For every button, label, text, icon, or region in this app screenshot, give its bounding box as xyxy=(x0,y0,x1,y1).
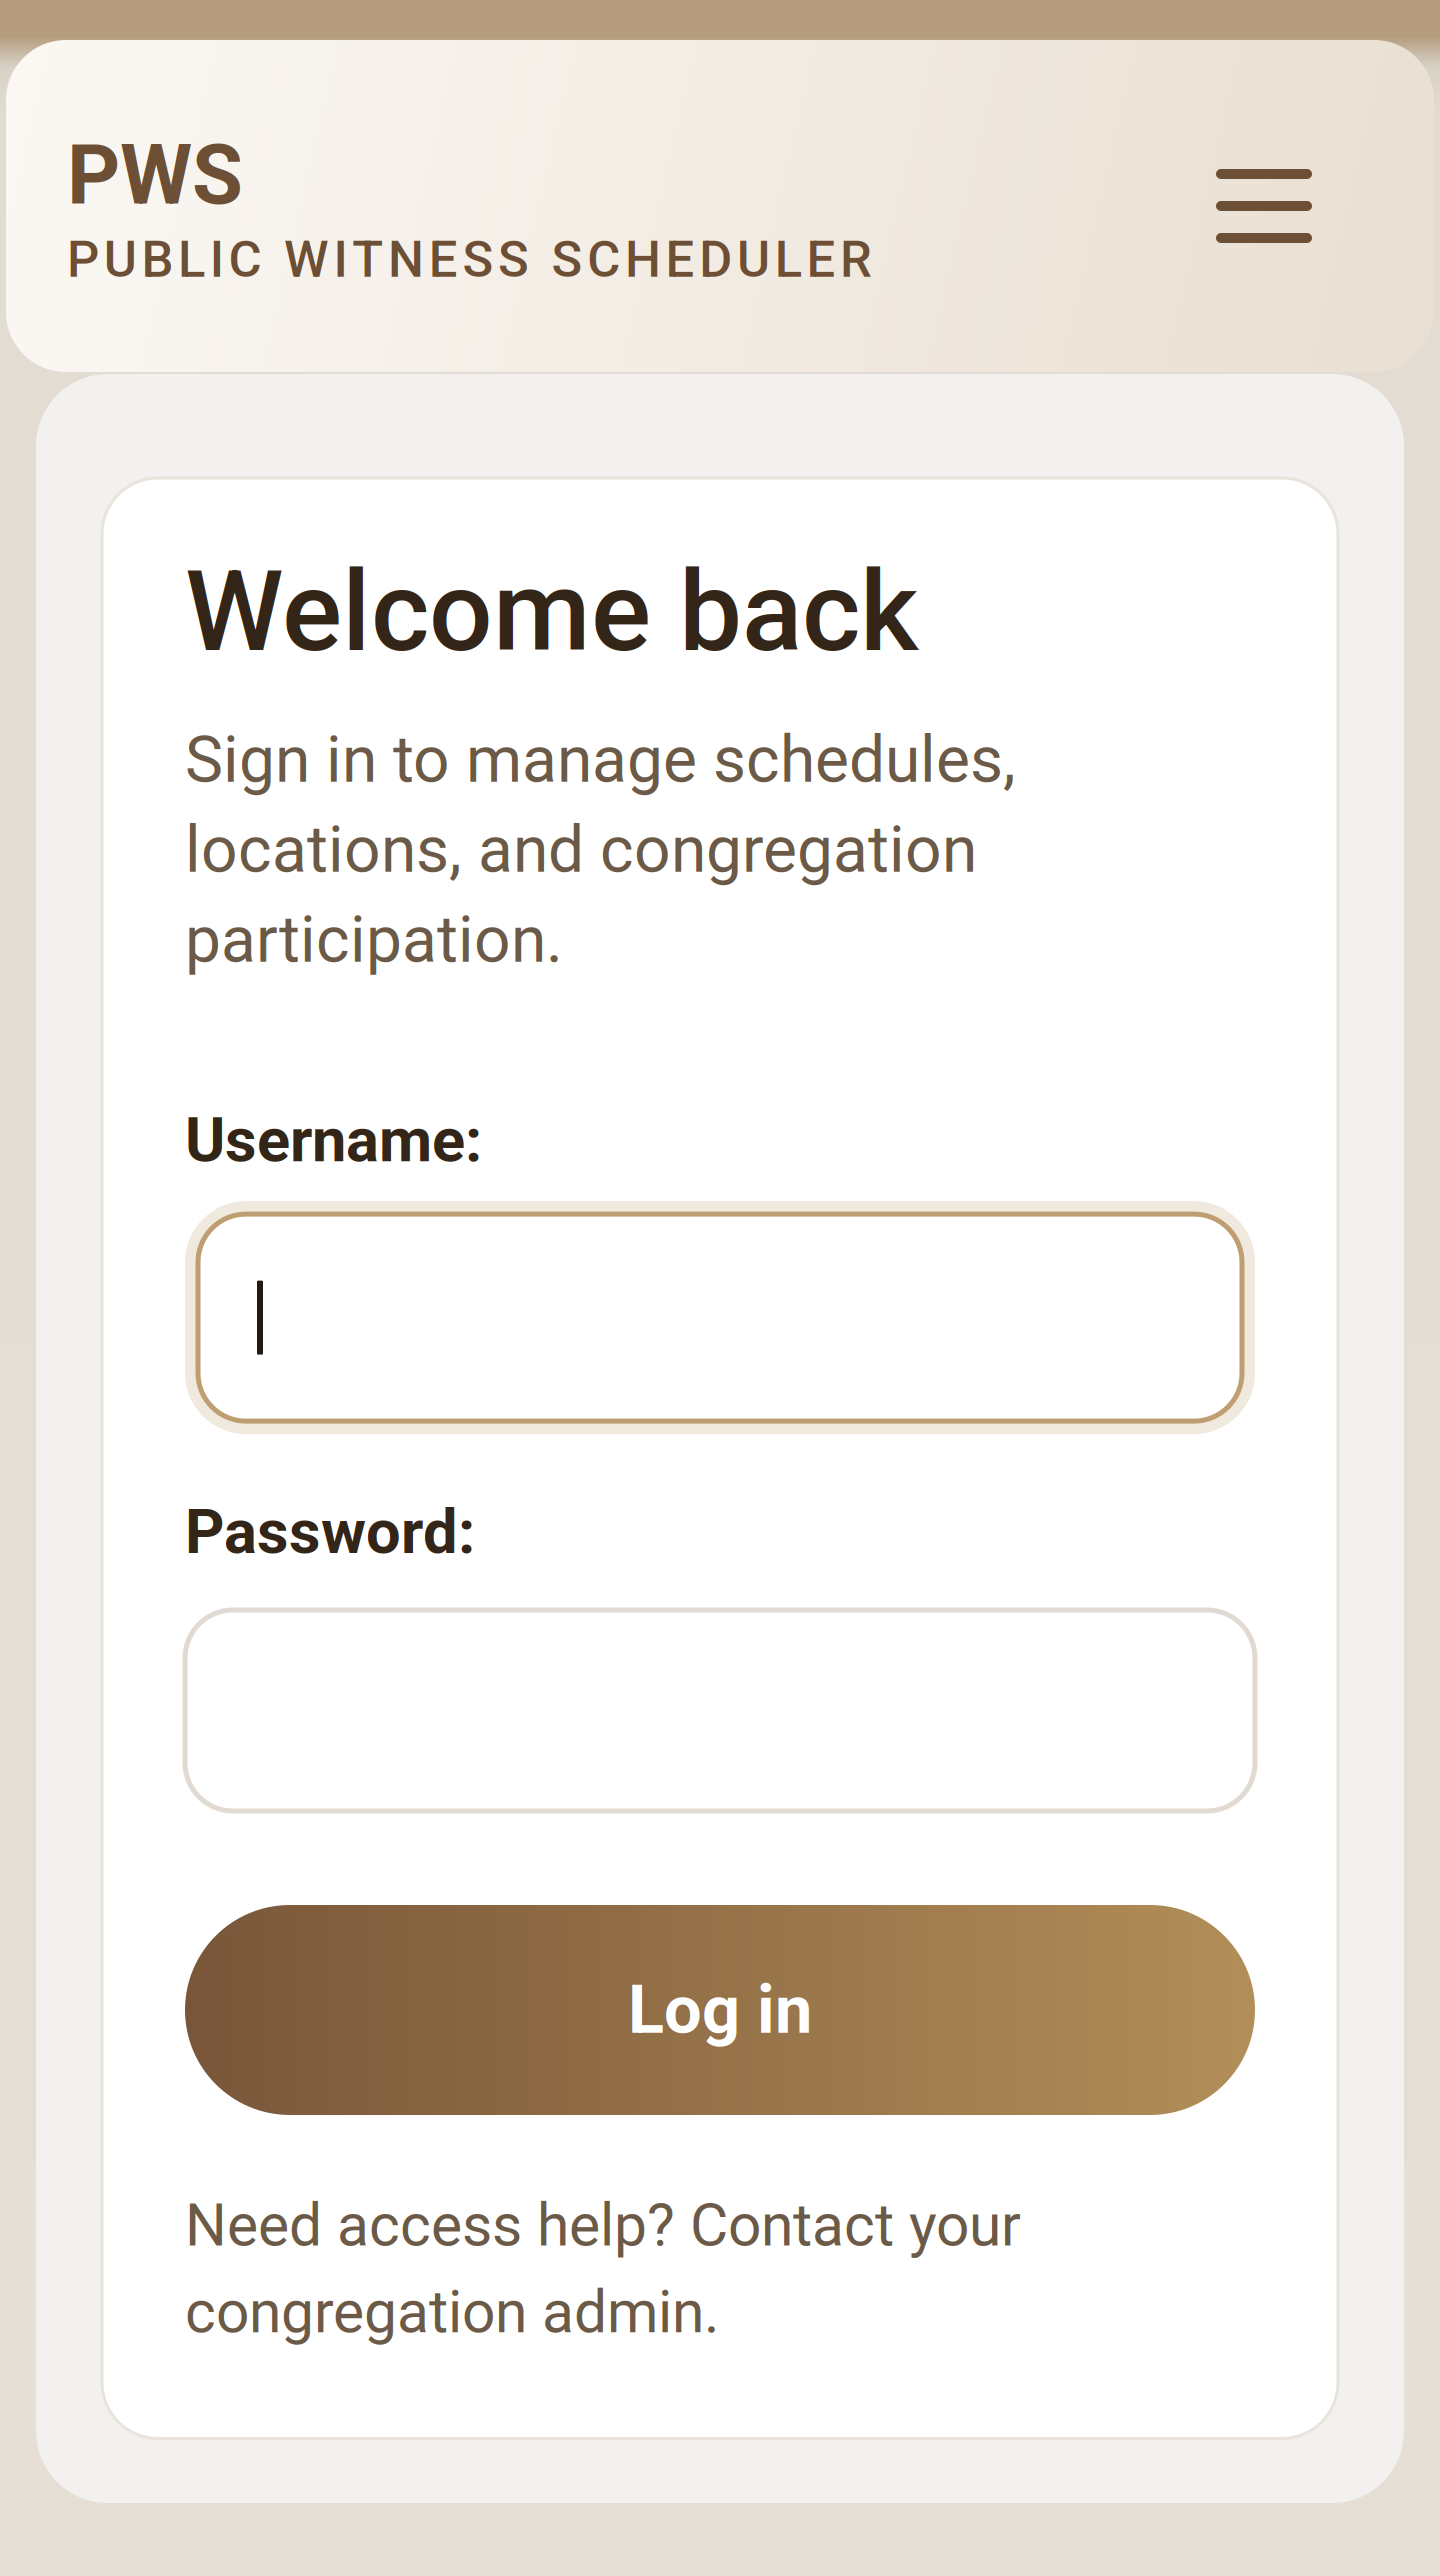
staticText: I xyxy=(210,230,224,289)
staticText: E xyxy=(666,230,695,289)
staticText: Sign in to manage schedules, locations, … xyxy=(185,722,1016,977)
staticText: H xyxy=(625,230,661,289)
staticText: P xyxy=(67,230,99,289)
staticText: U xyxy=(737,230,770,289)
staticText: Username: xyxy=(185,1104,482,1176)
staticText: E xyxy=(429,230,458,289)
staticText: Log in xyxy=(628,1971,812,2049)
staticText: D xyxy=(699,230,732,289)
staticText: E xyxy=(806,230,835,289)
staticText: Welcome back xyxy=(185,546,918,677)
staticText: Password: xyxy=(185,1496,475,1568)
staticText: S xyxy=(498,230,529,289)
staticText: R xyxy=(840,230,872,289)
staticText: B xyxy=(141,230,173,289)
staticText: N xyxy=(388,230,424,289)
staticText: Need access help? Contact your congregat… xyxy=(185,2191,1021,2346)
staticText: S xyxy=(462,230,493,289)
staticText: I xyxy=(334,230,348,289)
staticText: PWS xyxy=(67,127,243,224)
button[interactable]: Log in xyxy=(185,1905,1255,2115)
staticText: L xyxy=(178,230,205,289)
button[interactable]: Open menu xyxy=(1194,139,1334,273)
staticText: W xyxy=(284,230,329,289)
staticText: L xyxy=(775,230,802,289)
staticText: C xyxy=(228,230,261,289)
staticText: T xyxy=(352,230,383,289)
staticText: U xyxy=(104,230,137,289)
staticText: C xyxy=(587,230,620,289)
staticText: S xyxy=(551,230,582,289)
